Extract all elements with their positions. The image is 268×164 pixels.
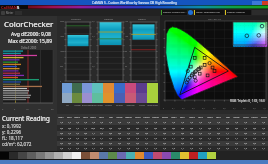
staticText: 0,9 — [60, 127, 63, 130]
staticText: 1,2 — [190, 147, 193, 150]
staticText: Gamma — [104, 17, 113, 20]
staticText: 60 — [125, 65, 128, 67]
button[interactable]: Connect — [188, 10, 193, 15]
button[interactable]: Display: Custom Wo... — [161, 10, 187, 15]
staticText: 1,4 — [100, 147, 103, 150]
staticText: Targ y — [99, 116, 104, 118]
staticText: 1,0 — [181, 137, 184, 140]
staticText: Avg dE2000: 9,08 — [11, 31, 51, 38]
staticText: 1,1 — [145, 147, 148, 150]
staticText: 1,1 — [92, 132, 95, 135]
button[interactable]: Pattern: Internal — [225, 10, 251, 15]
button[interactable] — [233, 22, 266, 45]
button[interactable]: Home — [1, 11, 5, 15]
staticText: 1,1 — [226, 132, 229, 135]
staticText: 1,3 — [92, 137, 95, 140]
staticText: 16,3 — [91, 127, 95, 130]
staticText: 0,8 — [172, 127, 175, 130]
staticText: 1,8 — [262, 121, 265, 124]
staticText: 0,1 — [172, 107, 175, 109]
staticText: 1,1 — [217, 127, 220, 130]
staticText: 0,9 — [190, 127, 193, 130]
staticText: 1,0 — [109, 137, 112, 140]
staticText: 1500 — [60, 35, 65, 37]
staticText: 1,1 — [181, 147, 184, 150]
staticText: 1,1 — [92, 147, 95, 150]
staticText: 1,9 — [163, 121, 166, 124]
staticText: 2,1 — [154, 142, 157, 145]
staticText: 1,0 — [199, 132, 202, 135]
staticText: Chroma — [152, 116, 159, 118]
staticText: CIE 1931 xy — [208, 17, 221, 20]
staticText: 2,9 — [92, 142, 95, 145]
staticText: dE2000 — [261, 116, 267, 118]
staticText: Targ y — [216, 116, 221, 118]
staticText: 1,3 — [127, 147, 130, 150]
staticText: Sky — [66, 104, 69, 106]
staticText: 2,4 — [262, 142, 265, 145]
staticText: Pattern: Internal — [227, 11, 245, 14]
staticText: 100 — [125, 35, 129, 37]
staticText: 1,2 — [163, 147, 166, 150]
staticText: Lum Err — [251, 116, 258, 118]
staticText: Display: Custom Wo... — [163, 11, 187, 14]
staticText: 2,2 — [84, 142, 87, 145]
staticText: 2,4 — [100, 142, 103, 145]
button[interactable]: Meter: Calibrated Unit — [194, 10, 224, 15]
staticText: 1,0 — [208, 132, 211, 135]
staticText: Light Err — [125, 116, 132, 118]
staticText: 1,2 — [76, 137, 79, 140]
staticText: 1,0 — [253, 132, 256, 135]
